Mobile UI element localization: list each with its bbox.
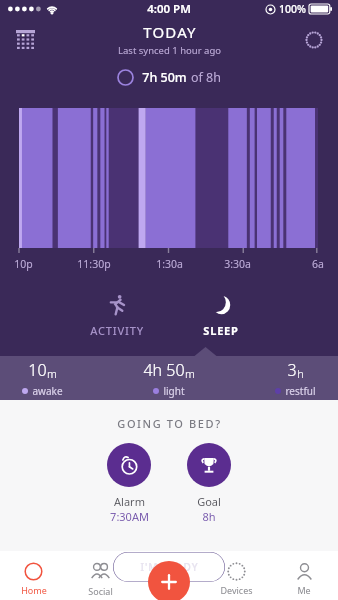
staticText: TODAY bbox=[143, 22, 197, 42]
staticText: 8h bbox=[202, 509, 216, 524]
staticText: Home bbox=[21, 584, 47, 596]
staticText: Last synced 1 hour ago bbox=[118, 44, 221, 57]
button[interactable]: Home bbox=[0, 557, 67, 600]
button[interactable]: Goal bbox=[187, 443, 231, 524]
button[interactable]: Devices bbox=[202, 557, 270, 600]
staticText: m bbox=[47, 366, 57, 381]
staticText: SLEEP bbox=[203, 323, 239, 338]
button[interactable]: Sync bbox=[300, 26, 328, 54]
staticText: Goal bbox=[197, 494, 221, 509]
button[interactable]: SLEEP bbox=[178, 285, 264, 347]
staticText: Me bbox=[297, 584, 311, 596]
staticText: 100% bbox=[279, 2, 306, 16]
staticText: ACTIVITY bbox=[90, 323, 144, 338]
staticText: I'M READY bbox=[140, 560, 199, 574]
staticText: Devices bbox=[220, 584, 253, 596]
button[interactable]: Me bbox=[270, 557, 338, 600]
button[interactable]: Social bbox=[67, 557, 134, 600]
staticText: Social bbox=[88, 585, 113, 597]
button[interactable]: I'M READY bbox=[113, 552, 225, 582]
button[interactable]: Add bbox=[148, 561, 190, 600]
staticText: Alarm bbox=[114, 494, 145, 509]
staticText: 4h 50 bbox=[143, 359, 185, 381]
staticText: m bbox=[185, 366, 195, 381]
button[interactable]: Calendar bbox=[10, 25, 40, 55]
staticText: 1:30a bbox=[156, 257, 183, 271]
staticText: 3:30a bbox=[224, 257, 251, 271]
staticText: light bbox=[163, 384, 185, 398]
button[interactable]: Alarm bbox=[107, 443, 151, 524]
staticText: 10p bbox=[14, 257, 33, 271]
staticText: GOING TO BED? bbox=[117, 416, 222, 431]
staticText: awake bbox=[32, 384, 63, 398]
staticText: 11:30p bbox=[77, 257, 111, 271]
staticText: h bbox=[297, 366, 304, 381]
staticText: 10 bbox=[28, 359, 47, 381]
staticText: of 8h bbox=[191, 69, 221, 86]
button[interactable]: ACTIVITY bbox=[74, 285, 160, 347]
staticText: restful bbox=[285, 384, 316, 398]
staticText: 3 bbox=[287, 359, 297, 381]
staticText: 6a bbox=[312, 257, 324, 271]
staticText: 4:00 PM bbox=[147, 1, 191, 17]
staticText: 7:30AM bbox=[110, 509, 149, 524]
staticText: 7h 50m bbox=[142, 69, 187, 86]
